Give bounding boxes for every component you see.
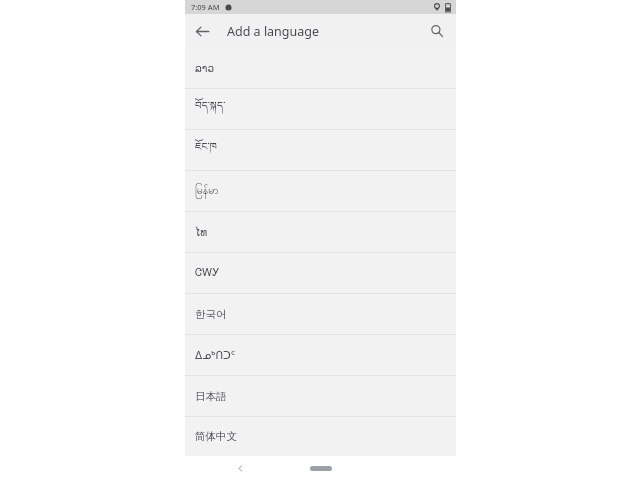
button[interactable]: ᏣᎳᎩ (185, 253, 456, 293)
button[interactable]: မြန်မာ (185, 171, 456, 211)
staticText: ລາວ (195, 62, 215, 74)
button[interactable]: 한국어 (185, 294, 456, 334)
button[interactable]: ᐃᓄᒃᑎᑐᑦ (185, 335, 456, 375)
button[interactable]: བོད་སྐད་ (185, 89, 456, 129)
button[interactable]: ཇོང་ཁ (185, 130, 456, 170)
button[interactable]: ລາວ (185, 48, 456, 88)
staticText: 简体中文 (195, 430, 237, 443)
staticText: ᐃᓄᒃᑎᑐᑦ (195, 349, 236, 361)
staticText: ᏣᎳᎩ (195, 268, 220, 279)
button[interactable]: 日本語 (185, 376, 456, 416)
staticText: 7:09 AM (191, 2, 220, 12)
button[interactable]: 简体中文 (185, 417, 456, 456)
staticText: 日本語 (195, 390, 227, 403)
button[interactable]: Home (310, 466, 332, 471)
button[interactable]: ໄທ (185, 212, 456, 252)
staticText: བོད་སྐད་ (195, 94, 226, 124)
button[interactable]: Navigate up (185, 14, 219, 48)
staticText: ໄທ (195, 226, 208, 238)
staticText: 한국어 (195, 308, 227, 321)
button[interactable]: Search (420, 14, 454, 48)
staticText: ཇོང་ཁ (195, 135, 218, 165)
staticText: Add a language (227, 23, 320, 40)
staticText: မြန်မာ (195, 184, 219, 199)
button[interactable]: Back (185, 456, 295, 480)
